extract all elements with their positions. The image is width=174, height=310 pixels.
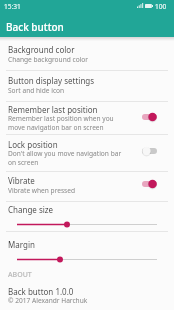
button[interactable] [0,70,174,101]
staticText: Button display settings [8,75,95,86]
button[interactable] [0,101,174,134]
staticText: Change background color [8,55,89,64]
staticText: © 2017 Alexandr Harchuk [8,296,88,305]
staticText: Change size [8,204,54,215]
button[interactable] [0,231,174,266]
staticText: Vibrate [8,175,35,186]
button[interactable] [0,171,174,201]
staticText: 100 [155,2,167,11]
staticText: 15:31 [4,2,21,11]
staticText: Remember last position when you move nav… [8,114,124,132]
staticText: Margin [8,239,35,250]
button[interactable] [0,37,174,70]
staticText: Back button 1.0.0 [8,286,74,297]
staticText: Remember last position [8,104,98,115]
staticText: Back button [6,20,64,34]
staticText: Sort and hide icon [8,86,65,95]
button[interactable] [0,134,174,171]
button[interactable] [0,280,174,308]
staticText: Don't allow you move navigation bar on s… [8,149,124,167]
staticText: Lock position [8,139,58,150]
staticText: Background color [8,44,75,55]
staticText: Vibrate when pressed [8,186,76,195]
staticText: ABOUT [8,270,32,280]
button[interactable] [0,201,174,231]
